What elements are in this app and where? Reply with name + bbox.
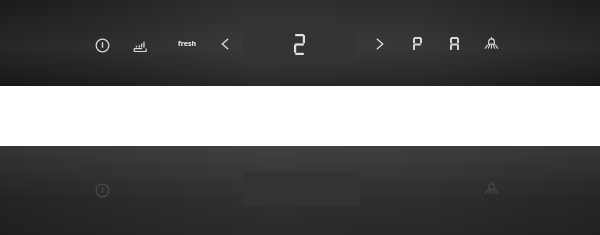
button[interactable]: Volume [127, 32, 153, 58]
button[interactable]: Power [90, 33, 114, 57]
button[interactable]: fresh [170, 33, 204, 55]
button[interactable]: Programme A [443, 33, 465, 55]
button[interactable]: Light [479, 176, 503, 200]
staticText: fresh [178, 39, 196, 49]
button[interactable]: Programme P [406, 33, 428, 55]
button[interactable]: Light [479, 31, 503, 55]
button[interactable]: Power [90, 178, 114, 202]
button[interactable] [243, 26, 356, 63]
button[interactable]: Previous [214, 33, 236, 55]
button[interactable]: Next [369, 33, 391, 55]
